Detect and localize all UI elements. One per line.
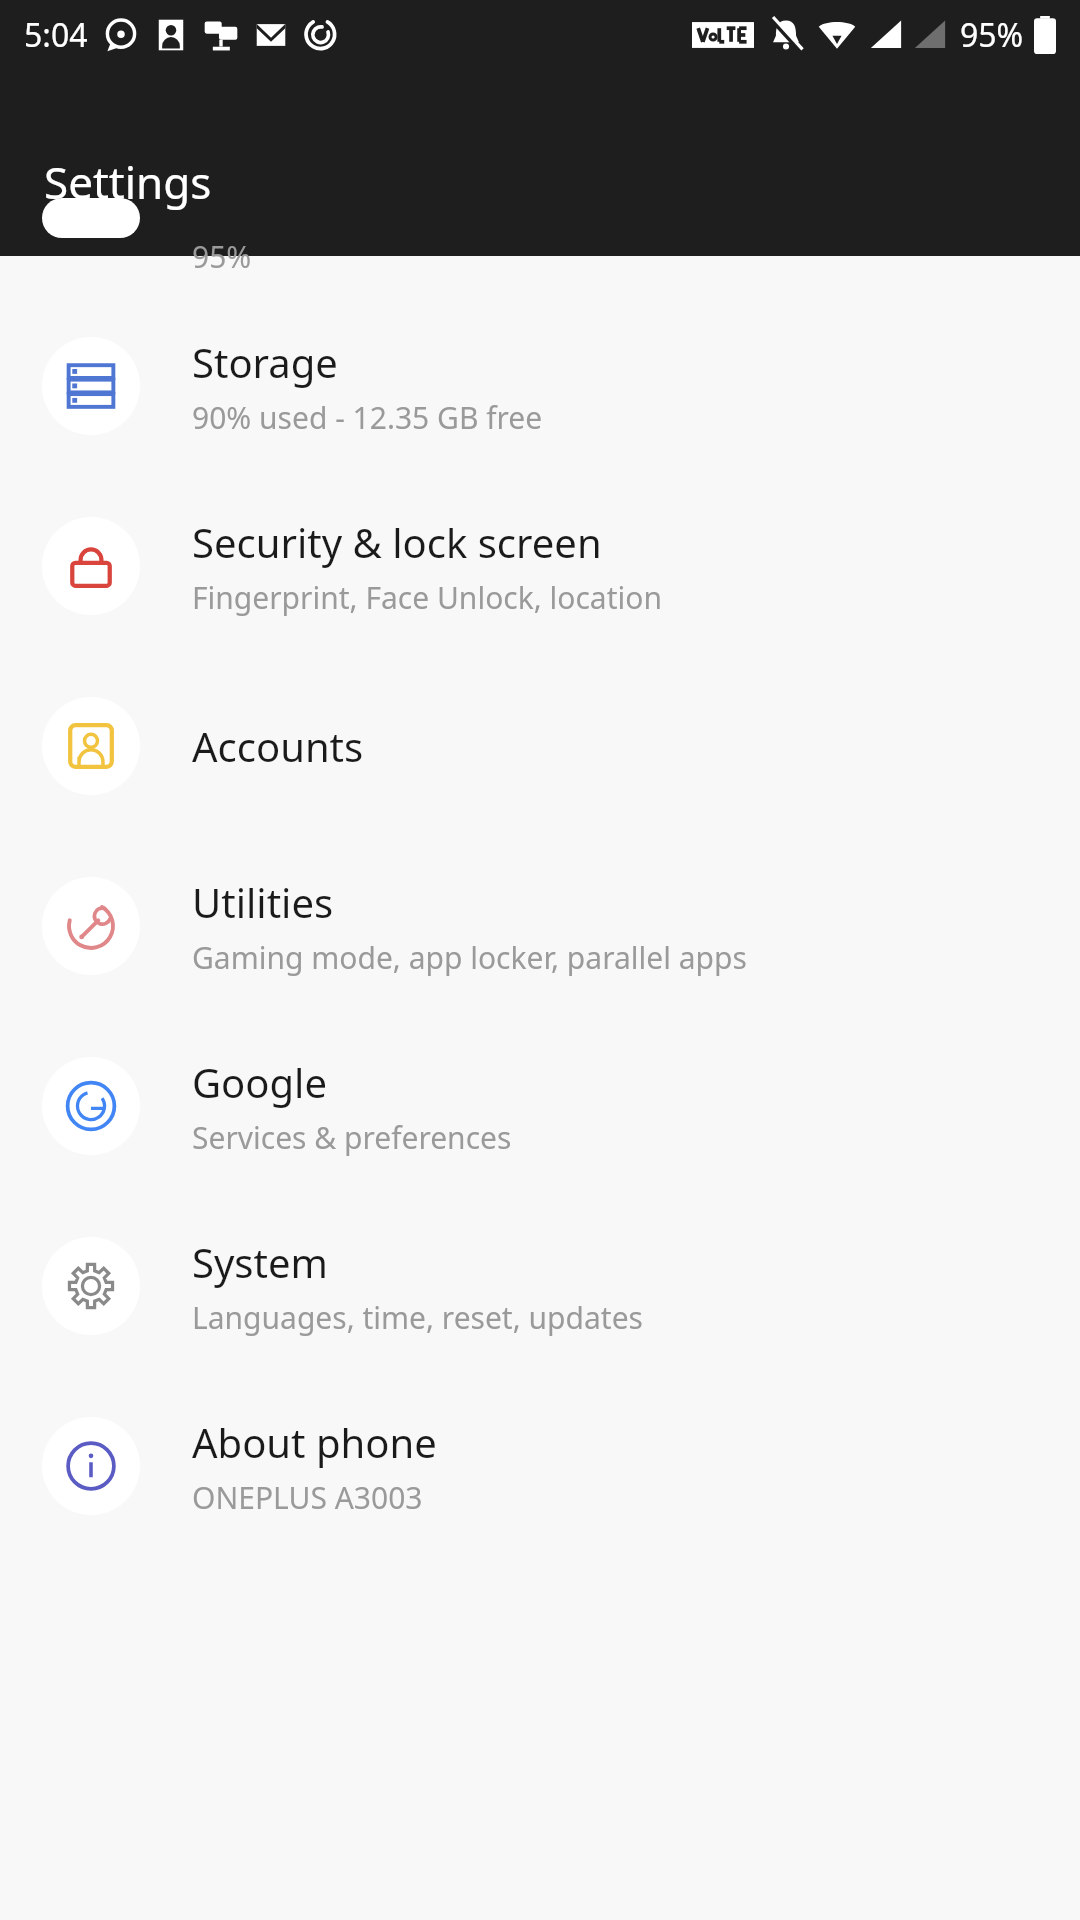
staticText: Gaming mode, app locker, parallel apps xyxy=(192,937,747,978)
staticText: Accounts xyxy=(192,719,364,773)
staticText: Languages, time, reset, updates xyxy=(192,1297,643,1338)
staticText: Utilities xyxy=(192,875,334,929)
button[interactable]: Utilities xyxy=(0,836,1080,1016)
button[interactable]: About phone xyxy=(0,1376,1080,1556)
staticText: 95% xyxy=(192,236,252,276)
button[interactable]: Security & lock screen xyxy=(0,476,1080,656)
staticText: 90% used - 12.35 GB free xyxy=(192,397,543,438)
staticText: System xyxy=(192,1235,328,1289)
staticText: Fingerprint, Face Unlock, location xyxy=(192,577,662,618)
staticText: 95% xyxy=(960,13,1024,57)
staticText: Security & lock screen xyxy=(192,515,602,569)
staticText: Google xyxy=(192,1055,327,1109)
button[interactable]: System xyxy=(0,1196,1080,1376)
staticText: ONEPLUS A3003 xyxy=(192,1477,423,1518)
staticText: Storage xyxy=(192,335,338,389)
button[interactable]: Storage xyxy=(0,296,1080,476)
staticText: 5:04 xyxy=(24,13,88,57)
staticText: About phone xyxy=(192,1415,437,1469)
button[interactable]: Google xyxy=(0,1016,1080,1196)
button[interactable]: Accounts xyxy=(0,656,1080,836)
button[interactable]: 95% xyxy=(0,256,1080,296)
staticText: Services & preferences xyxy=(192,1117,512,1158)
staticText: Settings xyxy=(44,152,212,212)
